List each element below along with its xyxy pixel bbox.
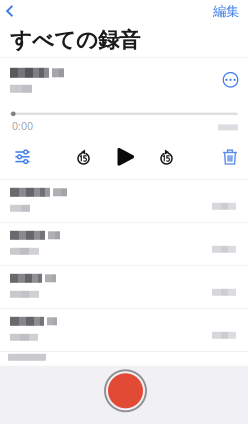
button[interactable]: Back [0,2,26,20]
staticText: 0:00 [12,119,33,133]
button[interactable]: Recording [0,223,248,266]
button[interactable]: Recording [0,266,248,309]
button[interactable]: Recording [0,180,248,223]
button[interactable]: Record [101,367,149,415]
button[interactable]: Playback settings [10,147,34,167]
staticText: 編集 [213,3,239,19]
button[interactable]: Play [114,147,138,167]
staticText: すべての録音 [10,27,140,53]
button[interactable]: More options [223,72,238,87]
button[interactable]: Recording [0,309,248,352]
button[interactable]: Skip forward 15 seconds [155,147,177,167]
button[interactable]: Delete [218,147,242,167]
button[interactable]: 編集 [213,0,248,22]
button[interactable]: Skip back 15 seconds [72,147,94,167]
